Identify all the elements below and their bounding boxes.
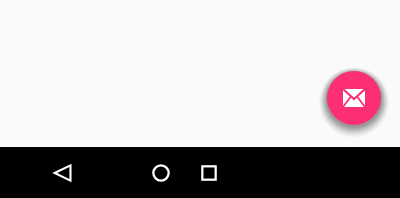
button[interactable]: Home <box>137 149 185 197</box>
button[interactable]: Back <box>39 149 87 197</box>
button[interactable]: Compose message <box>327 71 381 125</box>
button[interactable]: Recent apps <box>185 149 233 197</box>
